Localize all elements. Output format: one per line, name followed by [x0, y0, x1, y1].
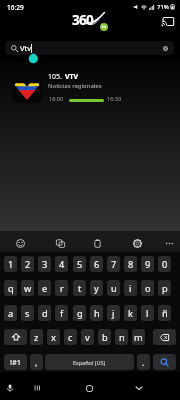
- button[interactable]: 1: [4, 256, 17, 272]
- button[interactable]: 6: [90, 256, 103, 272]
- button[interactable]: i: [124, 280, 137, 296]
- staticText: 105.: [48, 72, 62, 82]
- staticText: ñ: [162, 307, 168, 320]
- button[interactable]: l: [141, 305, 154, 321]
- button[interactable]: f: [55, 305, 68, 321]
- staticText: !#1: [10, 357, 22, 367]
- staticText: 360: [72, 11, 94, 29]
- button[interactable]: 7: [107, 256, 120, 272]
- button[interactable]: Recent apps: [30, 381, 44, 395]
- staticText: 16:29: [7, 3, 24, 12]
- staticText: j: [112, 307, 115, 320]
- button[interactable]: Back: [132, 381, 146, 395]
- button[interactable]: ñ: [158, 305, 171, 321]
- staticText: v: [85, 331, 90, 344]
- staticText: 9: [145, 258, 151, 271]
- staticText: c: [68, 331, 73, 344]
- staticText: 5: [77, 258, 83, 271]
- button[interactable]: z: [30, 329, 43, 345]
- staticText: 71%: [157, 3, 169, 11]
- button[interactable]: .: [137, 354, 150, 370]
- button[interactable]: j: [107, 305, 120, 321]
- button[interactable]: e: [38, 280, 51, 296]
- button[interactable]: g: [73, 305, 86, 321]
- button[interactable]: y: [90, 280, 103, 296]
- button[interactable]: t: [73, 280, 86, 296]
- button[interactable]: Clear search: [161, 44, 170, 53]
- staticText: d: [42, 307, 48, 320]
- button[interactable]: o: [141, 280, 154, 296]
- staticText: .: [142, 357, 145, 368]
- button[interactable]: p: [158, 280, 171, 296]
- button[interactable]: r: [55, 280, 68, 296]
- staticText: VTV: [65, 72, 79, 82]
- button[interactable]: 3: [38, 256, 51, 272]
- staticText: 1: [8, 258, 14, 271]
- button[interactable]: Home: [82, 381, 96, 395]
- button[interactable]: Español (US): [45, 354, 134, 370]
- button[interactable]: d: [38, 305, 51, 321]
- button[interactable]: Stickers: [52, 235, 68, 251]
- staticText: m: [134, 331, 143, 344]
- staticText: 4: [59, 258, 65, 271]
- staticText: r: [60, 282, 64, 295]
- button[interactable]: 9: [141, 256, 154, 272]
- staticText: o: [145, 282, 151, 295]
- button[interactable]: Search: [153, 354, 176, 370]
- button[interactable]: Clipboard: [89, 235, 105, 251]
- staticText: a: [8, 307, 14, 320]
- button[interactable]: Backspace: [153, 329, 176, 345]
- button[interactable]: k: [124, 305, 137, 321]
- staticText: w: [24, 282, 32, 295]
- staticText: 2: [25, 258, 31, 271]
- staticText: f: [60, 307, 64, 320]
- button[interactable]: More options: [161, 235, 177, 251]
- button[interactable]: 5: [73, 256, 86, 272]
- button[interactable]: w: [21, 280, 34, 296]
- button[interactable]: u: [107, 280, 120, 296]
- button[interactable]: h: [90, 305, 103, 321]
- button[interactable]: 2: [21, 256, 34, 272]
- button[interactable]: Emoji: [12, 235, 28, 251]
- staticText: n: [119, 331, 125, 344]
- staticText: l: [146, 307, 149, 320]
- button[interactable]: 8: [124, 256, 137, 272]
- button[interactable]: b: [98, 329, 111, 345]
- button[interactable]: 4: [55, 256, 68, 272]
- staticText: 6: [94, 258, 100, 271]
- staticText: g: [77, 307, 83, 320]
- button[interactable]: Keyboard settings: [129, 235, 145, 251]
- button[interactable]: m: [132, 329, 145, 345]
- button[interactable]: Vtv: [5, 41, 174, 55]
- button[interactable]: n: [115, 329, 128, 345]
- staticText: b: [102, 331, 108, 344]
- button[interactable]: 105.: [0, 62, 180, 114]
- staticText: i: [129, 282, 132, 295]
- button[interactable]: Cast screen: [158, 14, 175, 28]
- button[interactable]: x: [47, 329, 60, 345]
- staticText: Noticias regionales: [48, 82, 102, 90]
- button[interactable]: q: [4, 280, 17, 296]
- button[interactable]: Shift: [4, 329, 27, 345]
- staticText: Español (US): [73, 359, 106, 366]
- staticText: x: [51, 331, 56, 344]
- staticText: t: [78, 282, 82, 295]
- button[interactable]: a: [4, 305, 17, 321]
- button[interactable]: Voice input: [3, 381, 17, 395]
- button[interactable]: c: [64, 329, 77, 345]
- staticText: p: [162, 282, 168, 295]
- staticText: 8: [128, 258, 134, 271]
- staticText: z: [34, 331, 39, 344]
- staticText: Vtv: [20, 43, 32, 53]
- button[interactable]: s: [21, 305, 34, 321]
- button[interactable]: ,: [30, 354, 43, 370]
- staticText: s: [25, 307, 30, 320]
- staticText: u: [111, 282, 117, 295]
- button[interactable]: 0: [158, 256, 171, 272]
- button[interactable]: !#1: [4, 354, 27, 370]
- staticText: 0: [162, 258, 168, 271]
- button[interactable]: v: [81, 329, 94, 345]
- staticText: tv: [102, 24, 107, 30]
- staticText: 16:00: [49, 95, 64, 102]
- staticText: q: [8, 282, 14, 295]
